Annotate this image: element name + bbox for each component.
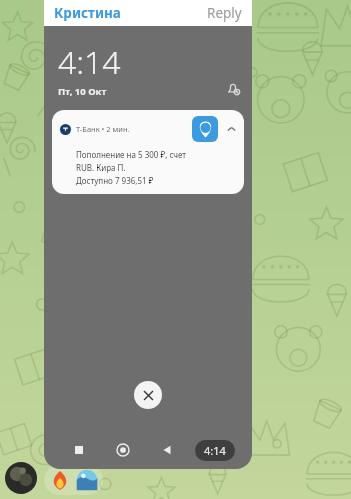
button[interactable]: Reply	[207, 4, 242, 22]
button[interactable]: Marble reaction	[75, 468, 99, 492]
button[interactable]: Clear all notifications	[134, 381, 162, 409]
button[interactable]: T-Банк • 2 мин.	[52, 110, 244, 194]
staticText: 4:14	[58, 40, 121, 84]
staticText: 4:14	[204, 443, 226, 458]
button[interactable]: 4:14	[195, 440, 235, 461]
staticText: Пополнение на 5 300 ₽, счет	[76, 149, 187, 160]
staticText: T-Банк • 2 мин.	[76, 124, 188, 134]
staticText: RUB. Кира П.	[76, 162, 126, 173]
button[interactable]: Back	[145, 435, 189, 465]
staticText: Доступно 7 936,51 ₽	[76, 175, 154, 186]
button[interactable]: Collapse	[225, 123, 237, 135]
button[interactable]: Recent apps	[56, 435, 101, 465]
button[interactable]: Silent notifications	[226, 82, 240, 96]
button[interactable]: Кристина	[54, 4, 207, 22]
staticText: Пт, 10 Окт	[58, 85, 107, 98]
button[interactable]: Fire reaction	[48, 468, 72, 492]
button[interactable]: Home	[101, 435, 145, 465]
button[interactable]: Avatar	[5, 462, 37, 494]
